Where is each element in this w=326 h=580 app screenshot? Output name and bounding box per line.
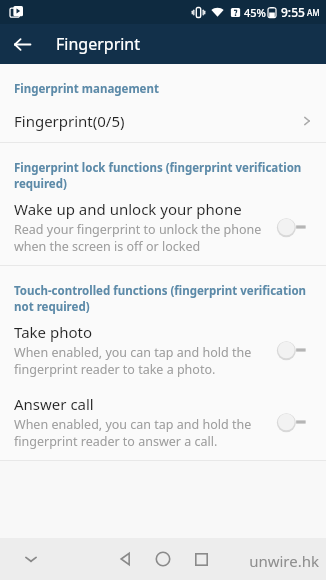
staticText: Fingerprint management xyxy=(14,81,159,97)
staticText: Fingerprint lock functions (fingerprint … xyxy=(14,160,302,191)
button[interactable]: Home xyxy=(145,541,181,577)
staticText: Read your fingerprint to unlock the phon… xyxy=(14,221,262,254)
staticText: When enabled, you can tap and hold the f… xyxy=(14,344,252,377)
staticText: Wake up and unlock your phone xyxy=(14,199,242,219)
staticText: 45% xyxy=(244,5,266,20)
button[interactable]: Wake up and unlock your phone xyxy=(0,193,326,265)
button[interactable]: Back xyxy=(6,28,38,60)
button[interactable]: Toggle xyxy=(276,337,314,363)
button[interactable]: Hide xyxy=(14,542,48,576)
staticText: 9:55 xyxy=(281,4,305,20)
button[interactable]: Take photo xyxy=(0,316,326,388)
button[interactable]: Toggle xyxy=(276,409,314,435)
staticText: Fingerprint(0/5) xyxy=(14,111,300,131)
staticText: When enabled, you can tap and hold the f… xyxy=(14,416,252,449)
staticText: AM xyxy=(307,7,320,18)
button[interactable]: Recents xyxy=(183,541,219,577)
button[interactable]: Answer call xyxy=(0,388,326,460)
staticText: Answer call xyxy=(14,394,94,414)
button[interactable]: Toggle xyxy=(276,214,314,240)
button[interactable]: Fingerprint(0/5) xyxy=(0,99,326,142)
staticText: Touch-controlled functions (fingerprint … xyxy=(14,283,307,314)
staticText: Fingerprint xyxy=(56,33,141,55)
button[interactable]: Back xyxy=(107,541,143,577)
staticText: Take photo xyxy=(14,322,92,342)
staticText: unwire.hk xyxy=(249,551,319,571)
